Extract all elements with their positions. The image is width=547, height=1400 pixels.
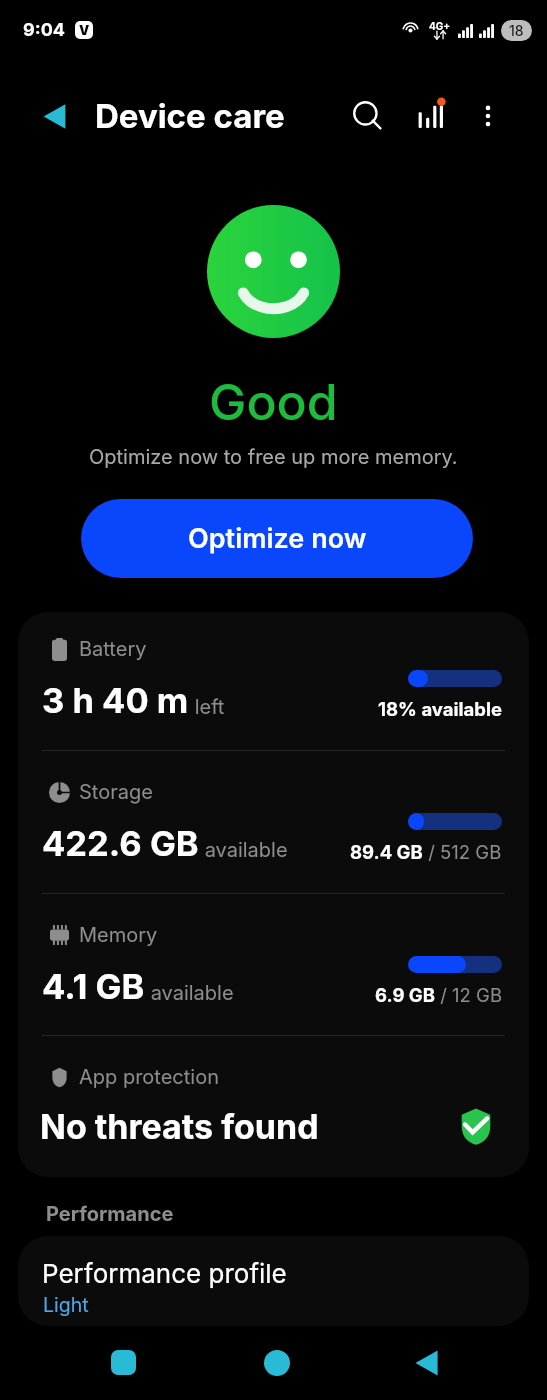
staticText: Memory bbox=[79, 923, 158, 947]
button[interactable]: Home bbox=[250, 1336, 303, 1389]
button[interactable]: Storage bbox=[18, 755, 529, 893]
staticText: 9:04 bbox=[23, 19, 66, 41]
button[interactable]: App protection bbox=[18, 1040, 529, 1177]
staticText: left bbox=[189, 695, 225, 719]
staticText: / 12 GB bbox=[435, 984, 502, 1006]
staticText: 89.4 GB bbox=[350, 841, 423, 863]
staticText: 422.6 GB bbox=[42, 823, 199, 865]
button[interactable]: Memory bbox=[18, 898, 529, 1036]
button[interactable]: Recents bbox=[97, 1336, 150, 1389]
staticText: available bbox=[199, 838, 288, 862]
staticText: App protection bbox=[79, 1065, 219, 1089]
button[interactable]: Back bbox=[401, 1336, 454, 1389]
button[interactable]: Optimize now bbox=[81, 499, 473, 578]
staticText: 18 bbox=[509, 22, 524, 39]
staticText: / 512 GB bbox=[423, 841, 502, 863]
staticText: Storage bbox=[79, 780, 153, 804]
staticText: available bbox=[145, 981, 234, 1005]
staticText: No threats found bbox=[40, 1106, 319, 1147]
button[interactable]: Battery bbox=[18, 612, 529, 750]
button[interactable]: Usage statistics bbox=[407, 92, 455, 140]
staticText: Good bbox=[209, 372, 338, 432]
staticText: Light bbox=[43, 1293, 89, 1317]
button[interactable]: More options bbox=[464, 92, 512, 140]
staticText: 3 h 40 m bbox=[42, 680, 189, 722]
staticText: Device care bbox=[95, 96, 285, 136]
staticText: 6.9 GB bbox=[375, 984, 435, 1006]
staticText: 4G+ bbox=[429, 20, 451, 32]
staticText: Optimize now to free up more memory. bbox=[89, 445, 458, 469]
staticText: Performance bbox=[46, 1202, 174, 1226]
staticText: 4.1 GB bbox=[42, 966, 145, 1008]
button[interactable]: Search bbox=[344, 92, 392, 140]
button[interactable]: Navigate up bbox=[32, 93, 78, 139]
staticText: V bbox=[79, 22, 90, 38]
staticText: 18% bbox=[378, 698, 417, 720]
staticText: Optimize now bbox=[188, 522, 367, 555]
staticText: available bbox=[417, 698, 502, 720]
staticText: Performance profile bbox=[42, 1258, 287, 1289]
button[interactable]: Performance profile bbox=[18, 1236, 529, 1326]
staticText: Battery bbox=[79, 637, 147, 661]
